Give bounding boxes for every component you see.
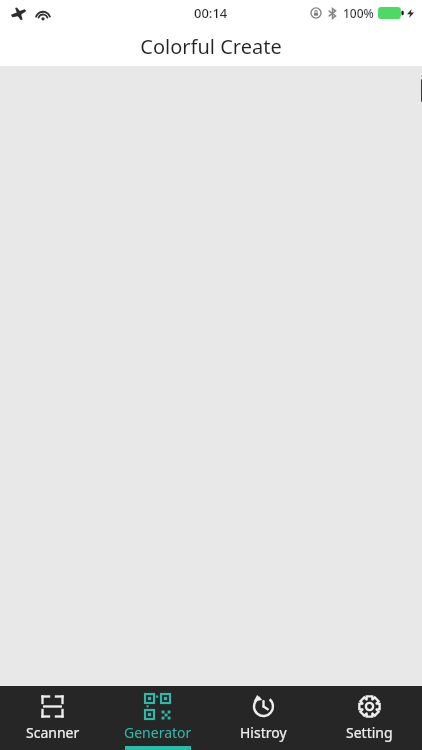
button[interactable]: Scanner xyxy=(0,686,105,750)
button[interactable]: Setting xyxy=(316,686,422,750)
button[interactable]: Histroy xyxy=(210,686,316,750)
staticText: Scanner xyxy=(26,723,80,742)
staticText: Setting xyxy=(346,723,393,742)
staticText: Generator xyxy=(124,723,192,742)
button[interactable]: Generator xyxy=(105,686,210,750)
staticText: 100% xyxy=(343,5,374,21)
staticText: 00:14 xyxy=(194,4,228,22)
staticText: Colorful Create xyxy=(140,33,282,60)
staticText: Histroy xyxy=(240,723,287,742)
